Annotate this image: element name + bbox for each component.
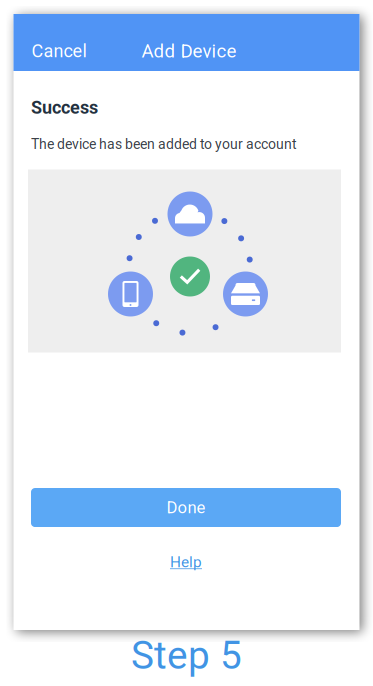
staticText: Success xyxy=(31,97,98,118)
staticText: Add Device xyxy=(141,40,236,62)
button[interactable]: Help xyxy=(31,547,341,577)
staticText: The device has been added to your accoun… xyxy=(31,136,297,152)
button[interactable]: Add Device xyxy=(112,30,254,71)
button[interactable]: Cancel xyxy=(13,30,112,71)
staticText: Cancel xyxy=(31,40,86,62)
staticText: Help xyxy=(170,553,202,571)
staticText: Step 5 xyxy=(131,633,242,678)
staticText: Done xyxy=(166,498,205,517)
button[interactable]: Done xyxy=(31,488,341,527)
button[interactable]: Step 5 xyxy=(131,630,242,678)
